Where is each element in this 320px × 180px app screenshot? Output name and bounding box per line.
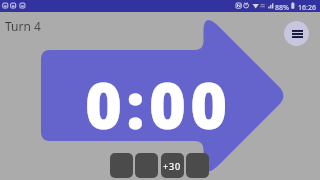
button[interactable]: Reset turn bbox=[135, 153, 158, 178]
staticText: 88% bbox=[275, 3, 289, 13]
staticText: Turn 4 bbox=[5, 18, 41, 34]
button[interactable]: End turn bbox=[0, 0, 320, 180]
button[interactable]: Pause bbox=[110, 153, 133, 178]
staticText: +30 bbox=[163, 160, 182, 172]
button[interactable]: Next turn bbox=[186, 153, 209, 178]
button[interactable]: Menu bbox=[284, 21, 309, 46]
button[interactable]: +30 bbox=[161, 153, 184, 178]
staticText: 0:00 bbox=[85, 62, 232, 148]
staticText: 16:26 bbox=[298, 3, 316, 13]
